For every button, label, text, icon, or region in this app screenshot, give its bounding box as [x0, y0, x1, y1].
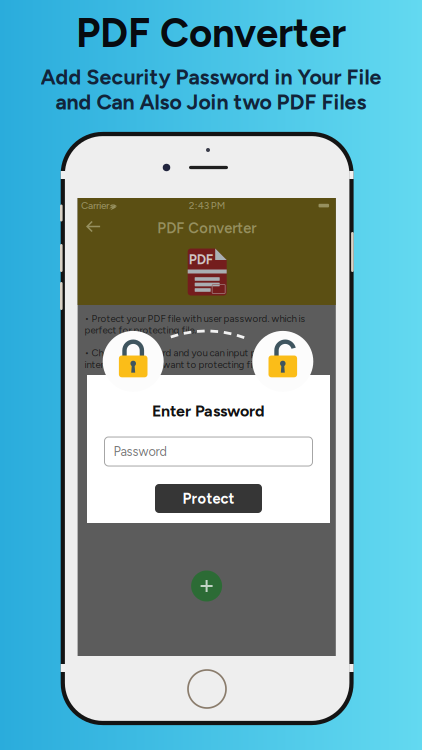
- staticText: Protect: [182, 490, 234, 507]
- button[interactable]: Protect: [155, 484, 262, 513]
- staticText: Password: [113, 444, 166, 459]
- staticText: PDF Converter: [157, 219, 256, 237]
- staticText: and Can Also Join two PDF Files: [55, 89, 366, 115]
- staticText: Enter Password: [152, 401, 265, 421]
- button[interactable]: Back: [78, 212, 110, 240]
- staticText: 2:43 PM: [189, 199, 225, 211]
- staticText: PDF: [189, 251, 213, 267]
- button[interactable]: Add file: [185, 564, 229, 608]
- staticText: Add Security Password in Your File: [40, 64, 381, 90]
- staticText: PDF Converter: [76, 9, 346, 57]
- staticText: • Protect your PDF file with user passwo…: [85, 313, 306, 336]
- button[interactable]: Password: [104, 437, 312, 466]
- staticText: Carrier: [81, 199, 109, 211]
- staticText: • Choose password and you can input pass…: [85, 347, 307, 370]
